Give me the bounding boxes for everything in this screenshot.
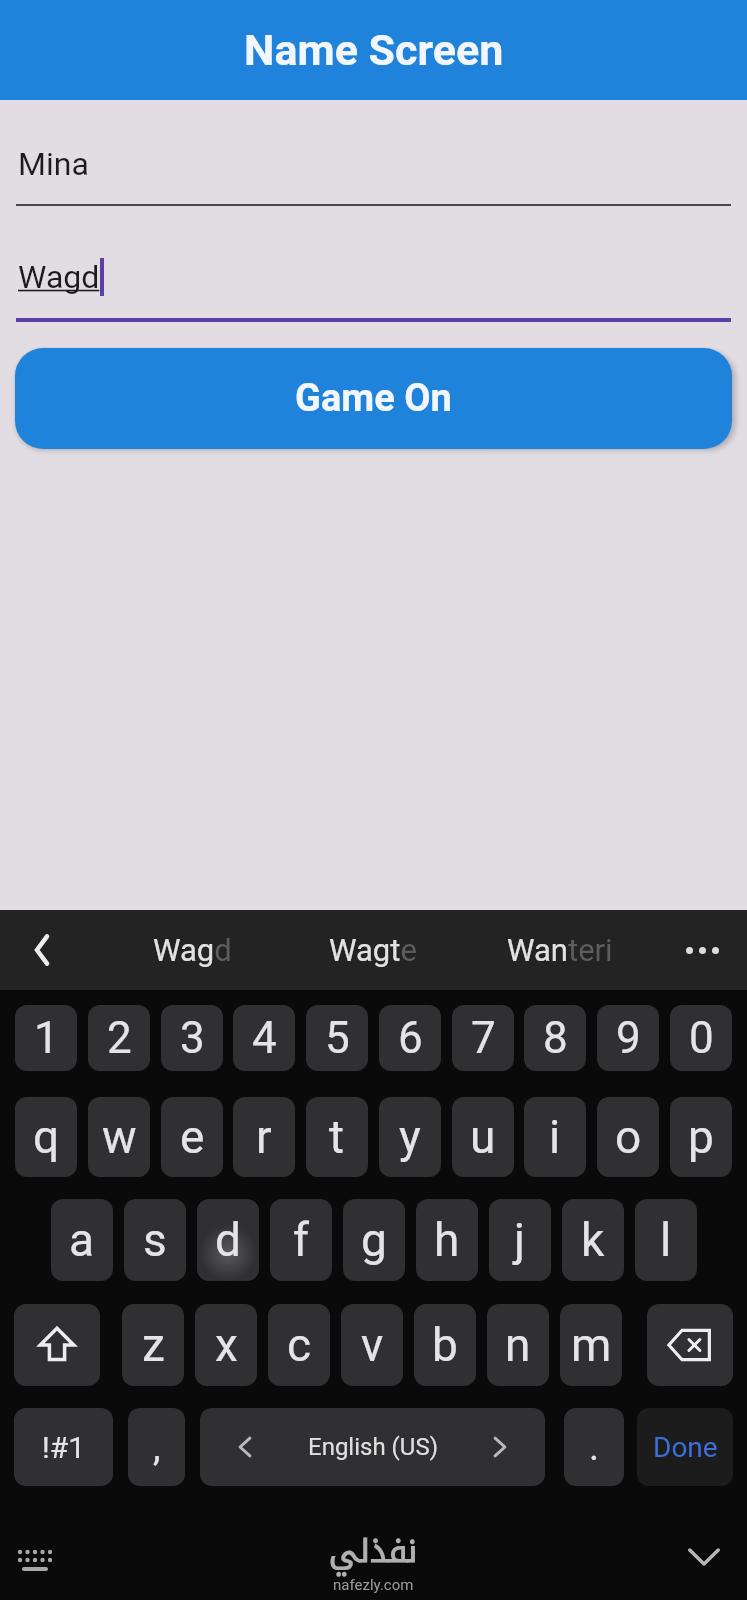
staticText: u xyxy=(470,1110,496,1164)
staticText: 4 xyxy=(252,1012,277,1064)
button[interactable]: d xyxy=(197,1199,259,1281)
staticText: j xyxy=(514,1213,526,1267)
button[interactable]: s xyxy=(124,1199,186,1281)
staticText: x xyxy=(215,1318,238,1372)
button[interactable]: 3 xyxy=(161,1005,223,1071)
staticText: 0 xyxy=(689,1012,714,1064)
button[interactable]: z xyxy=(122,1304,184,1386)
staticText: k xyxy=(581,1213,605,1267)
button[interactable]: l xyxy=(635,1199,697,1281)
staticText: v xyxy=(361,1318,384,1372)
button[interactable] xyxy=(28,932,56,968)
button[interactable] xyxy=(686,947,719,954)
button[interactable]: r xyxy=(233,1097,295,1177)
button[interactable]: 4 xyxy=(233,1005,295,1071)
staticText: !#1 xyxy=(42,1430,86,1465)
button[interactable]: a xyxy=(51,1199,113,1281)
staticText: t xyxy=(329,1110,345,1164)
button[interactable]: o xyxy=(597,1097,659,1177)
staticText: 2 xyxy=(107,1012,132,1064)
button[interactable]: Game On xyxy=(15,348,732,449)
staticText: h xyxy=(434,1213,460,1267)
staticText: b xyxy=(432,1318,458,1372)
staticText: i xyxy=(549,1110,561,1164)
button[interactable]: x xyxy=(195,1304,257,1386)
staticText: w xyxy=(102,1110,137,1164)
button[interactable]: 5 xyxy=(306,1005,368,1071)
button[interactable]: Wagd xyxy=(153,932,232,968)
staticText: nafezly.com xyxy=(333,1576,414,1594)
staticText: o xyxy=(615,1110,642,1164)
staticText: r xyxy=(256,1110,272,1164)
staticText: e xyxy=(180,1110,205,1164)
button[interactable]: q xyxy=(15,1097,77,1177)
staticText: , xyxy=(153,1425,161,1470)
button[interactable]: !#1 xyxy=(14,1408,113,1486)
button[interactable]: c xyxy=(268,1304,330,1386)
button[interactable] xyxy=(647,1304,733,1386)
staticText: 8 xyxy=(543,1012,568,1064)
button[interactable]: b xyxy=(414,1304,476,1386)
button[interactable]: , xyxy=(128,1408,185,1486)
button[interactable]: j xyxy=(489,1199,551,1281)
button[interactable]: 6 xyxy=(379,1005,441,1071)
staticText: English (US) xyxy=(308,1433,438,1461)
button[interactable]: t xyxy=(306,1097,368,1177)
staticText: a xyxy=(69,1213,95,1267)
button[interactable] xyxy=(16,1547,54,1575)
staticText: . xyxy=(589,1425,600,1470)
button[interactable]: Done xyxy=(637,1408,733,1486)
staticText: f xyxy=(293,1213,309,1267)
button[interactable]: 0 xyxy=(670,1005,732,1071)
staticText: z xyxy=(142,1318,165,1372)
staticText: q xyxy=(33,1110,60,1164)
staticText: g xyxy=(361,1213,387,1267)
button[interactable] xyxy=(687,1547,721,1567)
staticText: 6 xyxy=(398,1012,423,1064)
button[interactable]: u xyxy=(452,1097,514,1177)
button[interactable]: Wagd xyxy=(0,258,747,296)
staticText: 7 xyxy=(471,1012,496,1064)
staticText: s xyxy=(143,1213,167,1267)
staticText: l xyxy=(660,1213,672,1267)
staticText: p xyxy=(688,1110,714,1164)
button[interactable]: k xyxy=(562,1199,624,1281)
button[interactable]: Wanteri xyxy=(507,932,613,968)
button[interactable]: y xyxy=(379,1097,441,1177)
button[interactable]: h xyxy=(416,1199,478,1281)
staticText: نفذلي xyxy=(329,1521,418,1582)
staticText: 9 xyxy=(616,1012,641,1064)
button[interactable]: Mina xyxy=(0,145,747,183)
staticText: d xyxy=(215,1213,241,1267)
button[interactable]: i xyxy=(524,1097,586,1177)
staticText: Done xyxy=(653,1431,718,1464)
button[interactable]: 1 xyxy=(15,1005,77,1071)
staticText: Name Screen xyxy=(244,25,504,75)
button[interactable]: e xyxy=(161,1097,223,1177)
button[interactable]: 2 xyxy=(88,1005,150,1071)
button[interactable]: 8 xyxy=(524,1005,586,1071)
button[interactable] xyxy=(14,1304,100,1386)
staticText: 3 xyxy=(180,1012,205,1064)
button[interactable]: 9 xyxy=(597,1005,659,1071)
button[interactable]: English (US) xyxy=(200,1408,545,1486)
staticText: 1 xyxy=(34,1012,59,1064)
staticText: m xyxy=(571,1318,612,1372)
button[interactable]: v xyxy=(341,1304,403,1386)
staticText: n xyxy=(505,1318,531,1372)
staticText: Game On xyxy=(295,376,452,421)
staticText: 5 xyxy=(325,1012,350,1064)
button[interactable]: Wagte xyxy=(329,932,417,968)
button[interactable]: p xyxy=(670,1097,732,1177)
button[interactable]: m xyxy=(560,1304,622,1386)
button[interactable]: 7 xyxy=(452,1005,514,1071)
staticText: Mina xyxy=(18,145,89,183)
staticText: c xyxy=(287,1318,312,1372)
button[interactable]: g xyxy=(343,1199,405,1281)
staticText: y xyxy=(399,1110,421,1164)
button[interactable]: . xyxy=(564,1408,624,1486)
button[interactable]: w xyxy=(88,1097,150,1177)
button[interactable]: n xyxy=(487,1304,549,1386)
button[interactable]: f xyxy=(270,1199,332,1281)
staticText: Wagd xyxy=(18,258,100,296)
